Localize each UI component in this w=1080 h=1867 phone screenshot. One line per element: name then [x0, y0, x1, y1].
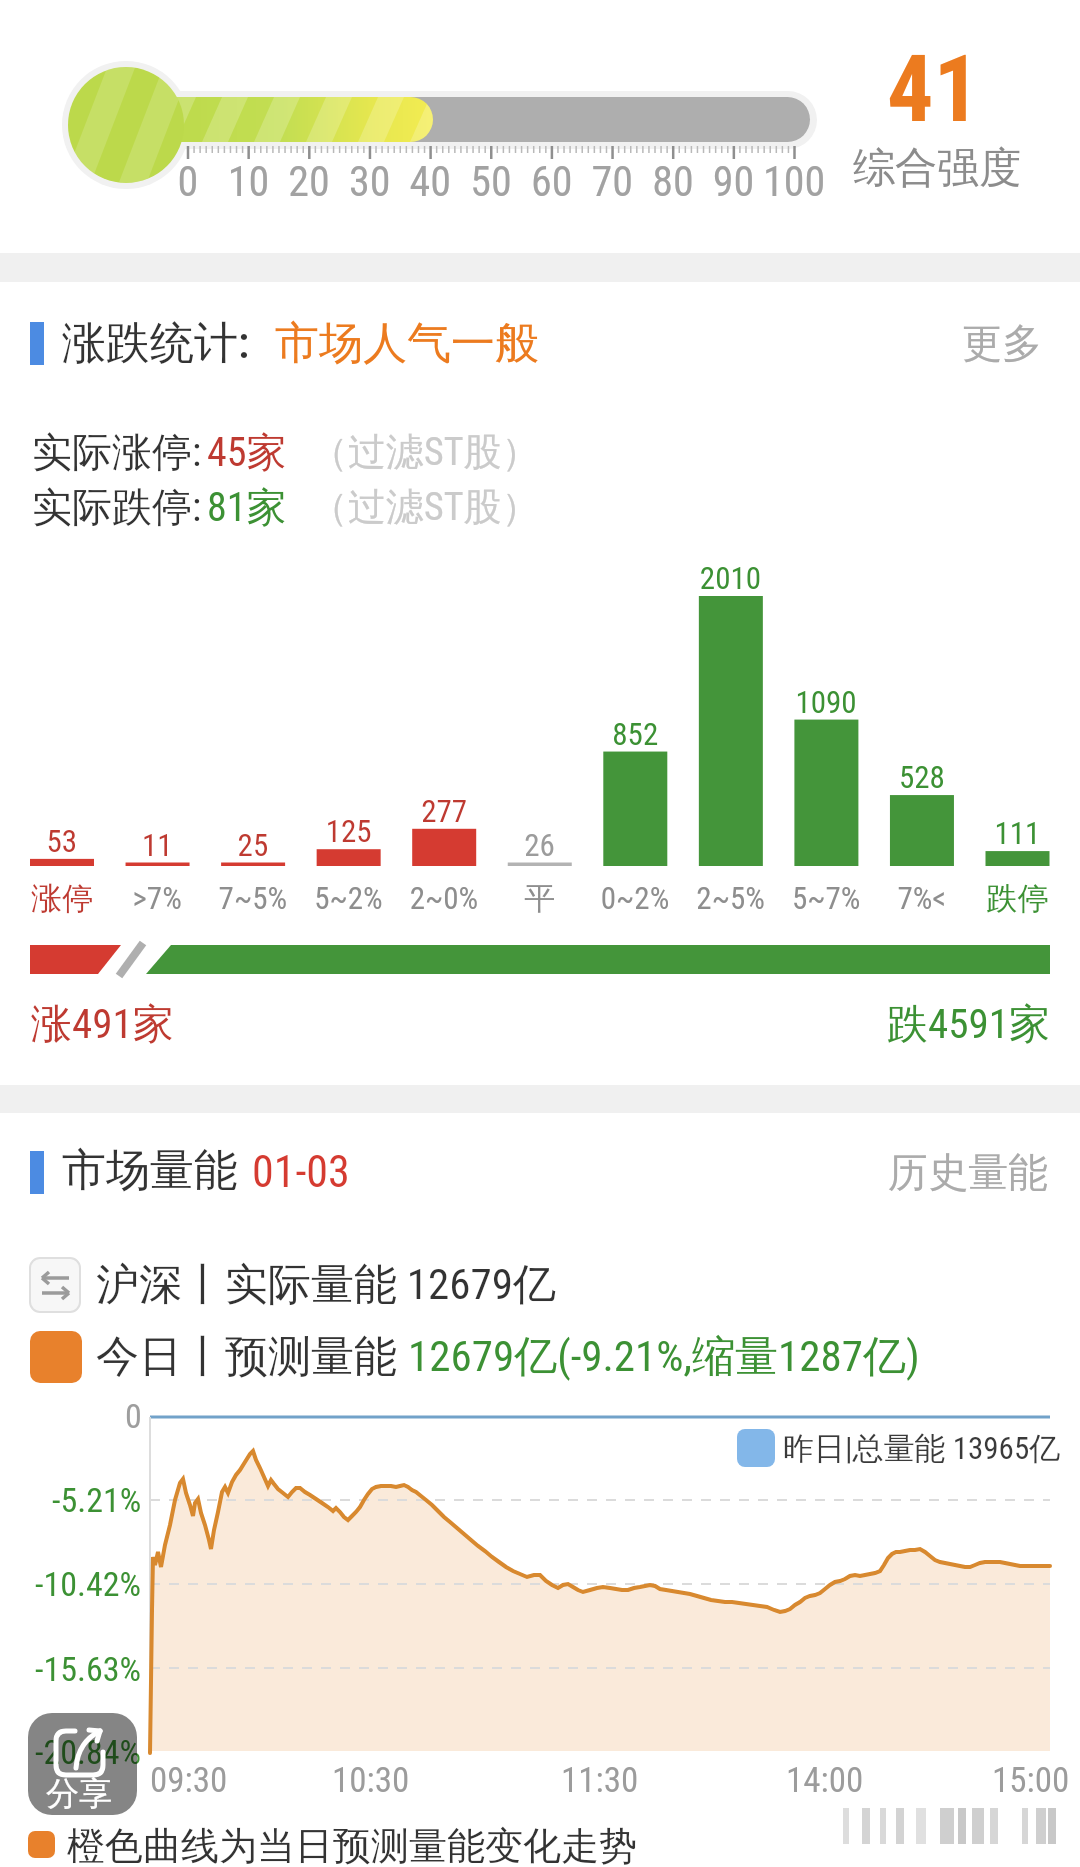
button[interactable] — [28, 1713, 137, 1815]
button[interactable] — [880, 1145, 1060, 1205]
button[interactable] — [940, 315, 1050, 375]
